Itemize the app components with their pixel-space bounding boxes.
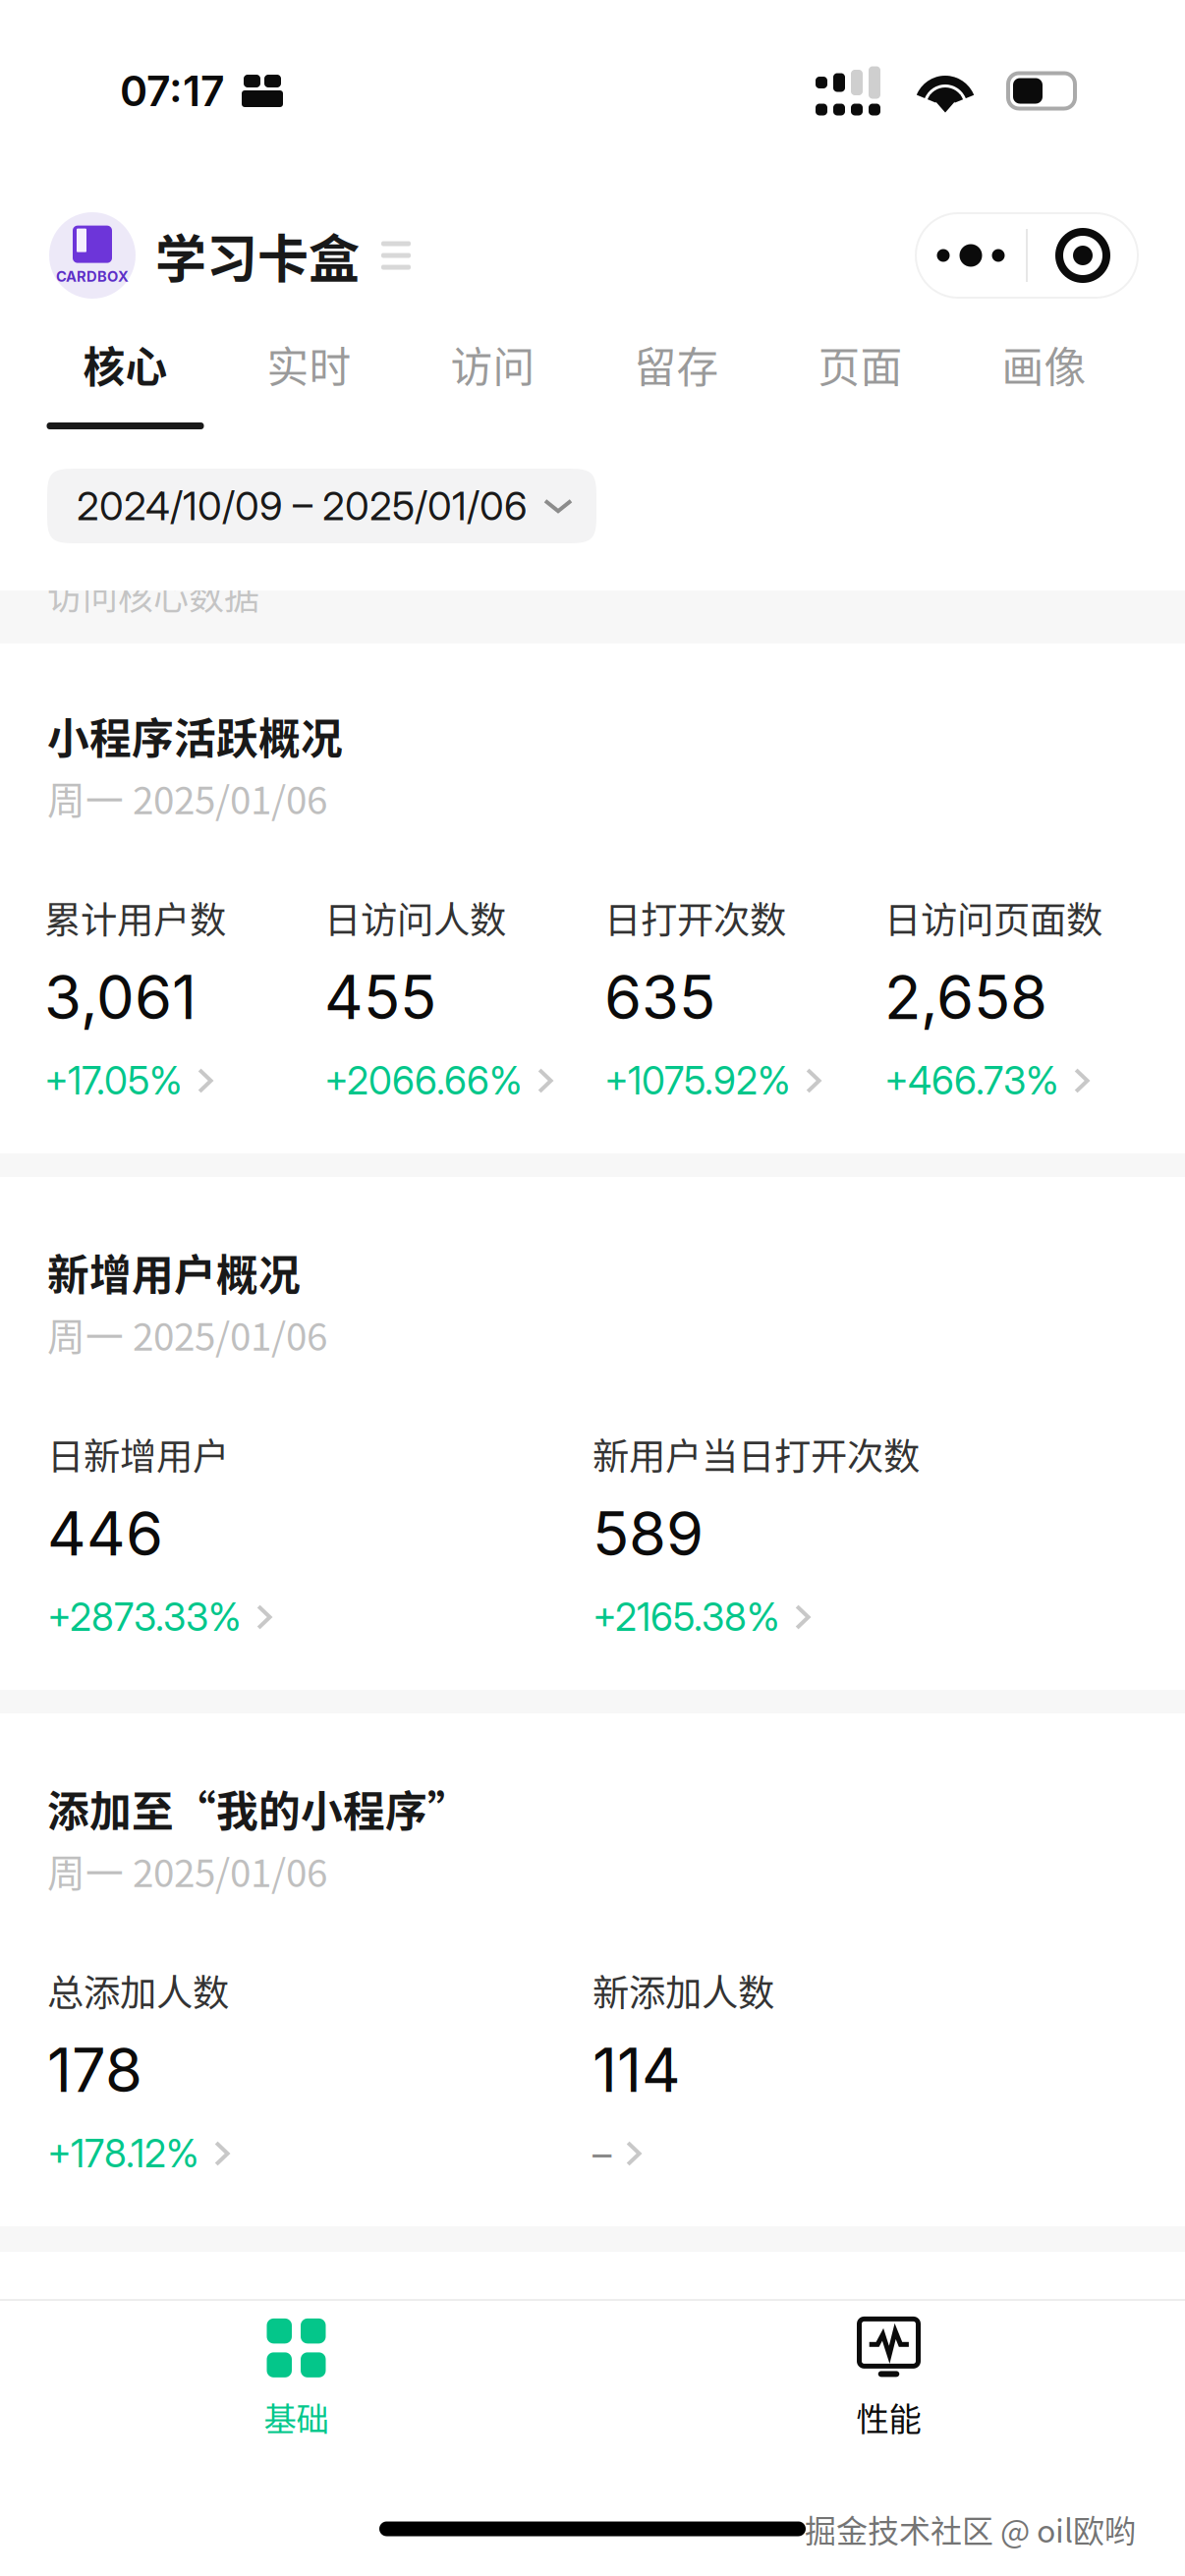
staticText: 周一 2025/01/06 bbox=[47, 1307, 327, 1362]
button[interactable]: 新用户当日打开次数 bbox=[592, 1430, 1114, 1640]
button[interactable]: 访问 bbox=[401, 329, 585, 429]
staticText: 日访问页面数 bbox=[884, 891, 1102, 944]
staticText: +2165.38% bbox=[592, 1594, 780, 1640]
staticText: 新增用户概况 bbox=[47, 1242, 301, 1303]
button[interactable]: 累计用户数 bbox=[44, 894, 324, 1103]
staticText: 2024/10/09 – 2025/01/06 bbox=[77, 482, 528, 530]
staticText: 留存 bbox=[634, 334, 719, 395]
staticText: 添加至“我的小程序” bbox=[47, 1778, 470, 1839]
staticText: 178 bbox=[47, 2034, 142, 2106]
button[interactable]: 性能 bbox=[592, 2301, 1185, 2458]
staticText: 页面 bbox=[818, 334, 903, 395]
staticText: 基础 bbox=[264, 2393, 329, 2441]
staticText: 455 bbox=[324, 961, 436, 1034]
staticText: 累计用户数 bbox=[44, 891, 226, 944]
staticText: CARDBOX bbox=[56, 268, 129, 285]
staticText: 2,658 bbox=[884, 961, 1047, 1034]
button[interactable]: 核心 bbox=[33, 329, 217, 429]
button[interactable]: 画像 bbox=[952, 329, 1136, 429]
staticText: 新用户当日打开次数 bbox=[592, 1428, 920, 1481]
staticText: 周一 2025/01/06 bbox=[47, 770, 327, 825]
staticText: 访问核心数据 bbox=[47, 569, 259, 620]
staticText: 日打开次数 bbox=[604, 891, 786, 944]
button[interactable]: 日新增用户 bbox=[47, 1430, 592, 1640]
staticText: 114 bbox=[592, 2034, 681, 2106]
staticText: +2066.66% bbox=[324, 1058, 523, 1104]
staticText: 学习卡盒 bbox=[155, 218, 360, 292]
staticText: 实时 bbox=[267, 334, 351, 395]
staticText: – bbox=[592, 2131, 611, 2177]
staticText: +466.73% bbox=[884, 1058, 1059, 1104]
button[interactable]: 基础 bbox=[0, 2301, 592, 2458]
staticText: +17.05% bbox=[44, 1058, 183, 1104]
staticText: 周一 2025/01/06 bbox=[47, 1843, 327, 1898]
button[interactable]: 2024/10/09 – 2025/01/06 bbox=[47, 469, 596, 543]
staticText: 访问 bbox=[451, 334, 535, 395]
staticText: 核心 bbox=[83, 334, 168, 395]
button[interactable]: More options bbox=[916, 213, 1026, 298]
staticText: 性能 bbox=[856, 2393, 921, 2441]
staticText: +2873.33% bbox=[47, 1594, 242, 1640]
button[interactable]: 新添加人数 bbox=[592, 1967, 1114, 2176]
staticText: +1075.92% bbox=[604, 1058, 791, 1104]
staticText: 新添加人数 bbox=[592, 1964, 774, 2017]
staticText: 635 bbox=[604, 961, 715, 1034]
button[interactable]: 实时 bbox=[217, 329, 401, 429]
staticText: 589 bbox=[592, 1497, 704, 1570]
button[interactable]: Close mini program bbox=[1028, 213, 1138, 298]
button[interactable]: 总添加人数 bbox=[47, 1967, 592, 2176]
staticText: 画像 bbox=[1002, 334, 1086, 395]
staticText: 掘金技术社区 @ oil欧哟 bbox=[805, 2506, 1136, 2552]
button[interactable]: 页面 bbox=[768, 329, 952, 429]
staticText: 3,061 bbox=[44, 961, 197, 1034]
staticText: 日访问人数 bbox=[324, 891, 506, 944]
button[interactable]: 留存 bbox=[585, 329, 768, 429]
button[interactable]: 日访问页面数 bbox=[884, 894, 1141, 1103]
staticText: +178.12% bbox=[47, 2131, 199, 2177]
button[interactable]: 日打开次数 bbox=[604, 894, 884, 1103]
staticText: 小程序现有概况第2个指标 bbox=[388, 2291, 797, 2342]
staticText: 446 bbox=[47, 1497, 163, 1570]
staticText: 07:17 bbox=[120, 66, 225, 116]
staticText: 日新增用户 bbox=[47, 1428, 229, 1481]
staticText: 小程序活跃概况 bbox=[47, 706, 343, 766]
button[interactable]: 日访问人数 bbox=[324, 894, 604, 1103]
staticText: 总添加人数 bbox=[47, 1964, 229, 2017]
